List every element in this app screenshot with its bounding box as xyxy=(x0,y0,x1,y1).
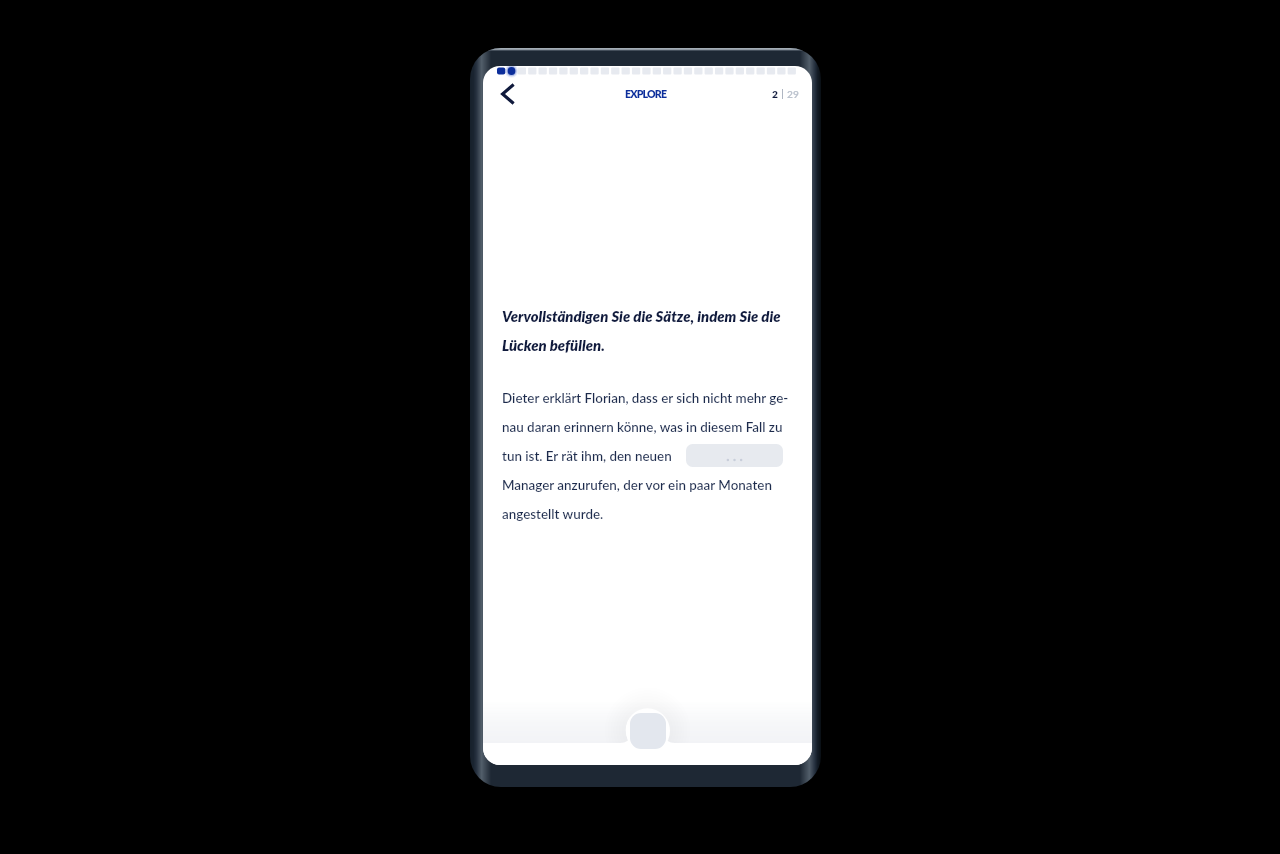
staticText: Manager anzurufen, der vor ein paar Mona… xyxy=(502,477,772,493)
staticText: EXPLORE xyxy=(625,88,667,101)
staticText: Lücken befüllen. xyxy=(502,336,605,354)
staticText: 29 xyxy=(787,88,799,100)
staticText: Vervollständigen Sie die Sätze, indem Si… xyxy=(502,307,781,325)
staticText: nau daran erinnern könne, was in diesem … xyxy=(502,419,783,435)
staticText: tun ist. Er rät ihm, den neuen xyxy=(502,448,672,464)
staticText: angestellt wurde. xyxy=(502,506,604,522)
button[interactable]: Record answer xyxy=(626,709,670,753)
button[interactable]: Back xyxy=(491,78,523,110)
staticText: 2 xyxy=(772,88,778,100)
button[interactable]: Fill in the blank xyxy=(686,444,783,467)
staticText: Dieter erklärt Florian, dass er sich nic… xyxy=(502,390,789,406)
